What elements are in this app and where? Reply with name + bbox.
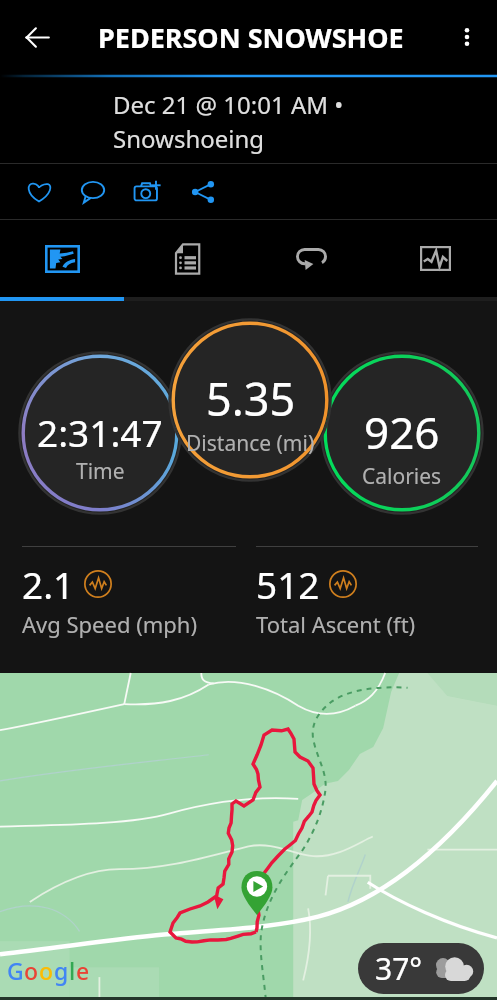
staticText: PEDERSON SNOWSHOE — [98, 19, 404, 56]
button[interactable]: 5.35 — [169, 319, 331, 481]
staticText: G — [7, 955, 24, 986]
button[interactable]: G — [0, 673, 497, 1000]
button[interactable]: More options — [444, 14, 490, 60]
button[interactable]: Charts tab — [373, 220, 497, 297]
staticText: 926 — [364, 402, 440, 462]
button[interactable]: Share — [176, 164, 230, 219]
button[interactable]: Comment — [66, 164, 120, 219]
staticText: Avg Speed (mph) — [22, 609, 198, 639]
button[interactable]: Laps tab — [249, 220, 373, 297]
staticText: Distance (mi) — [186, 429, 315, 458]
staticText: Time — [76, 457, 125, 486]
staticText: l — [69, 955, 76, 986]
staticText: Total Ascent (ft) — [256, 609, 416, 639]
staticText: Dec 21 @ 10:01 AM • Snowshoeing — [113, 88, 374, 156]
staticText: 512 — [256, 559, 320, 609]
staticText: e — [76, 955, 90, 986]
staticText: Calories — [362, 462, 442, 491]
staticText: g — [54, 955, 69, 986]
button[interactable]: 2.1 — [22, 546, 236, 639]
button[interactable]: 926 — [321, 352, 483, 514]
button[interactable]: Details tab — [125, 220, 249, 297]
staticText: o — [24, 955, 39, 986]
button[interactable]: 37° — [358, 943, 484, 994]
staticText: 5.35 — [206, 368, 296, 429]
staticText: o — [39, 955, 54, 986]
button[interactable]: Like — [12, 164, 66, 219]
button[interactable]: Add photo — [120, 164, 176, 219]
button[interactable]: Map tab — [0, 220, 125, 297]
button[interactable]: 2:31:47 — [19, 352, 181, 514]
staticText: 2.1 — [22, 559, 75, 609]
button[interactable]: Back — [14, 14, 60, 60]
staticText: 37° — [375, 948, 423, 989]
staticText: 2:31:47 — [37, 407, 163, 457]
button[interactable]: 512 — [256, 546, 478, 639]
